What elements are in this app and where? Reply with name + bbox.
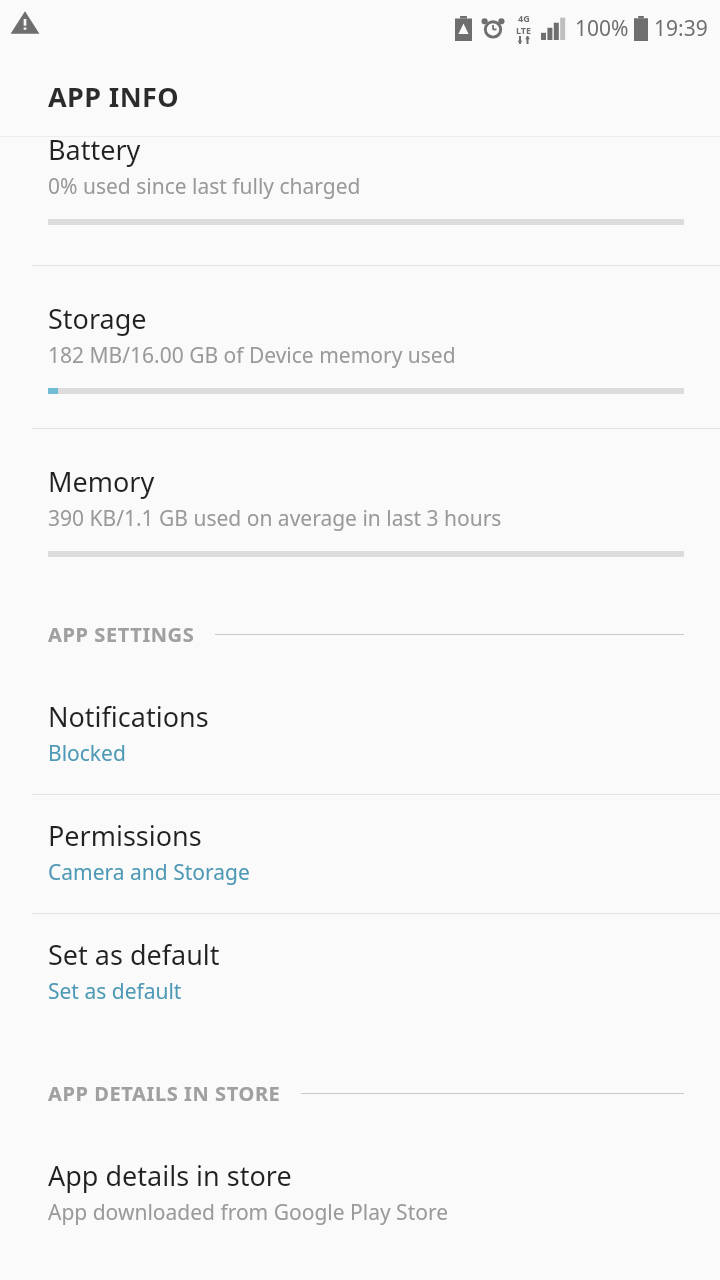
staticText: Permissions	[48, 817, 202, 854]
staticText: App details in store	[48, 1157, 292, 1194]
staticText: 182 MB/16.00 GB of Device memory used	[48, 341, 456, 370]
staticText: Camera and Storage	[48, 858, 250, 887]
staticText: Blocked	[48, 739, 126, 768]
staticText: 4G	[518, 12, 530, 24]
staticText: APP SETTINGS	[48, 621, 195, 648]
button[interactable]: Memory	[0, 429, 720, 557]
staticText: Battery	[48, 131, 141, 168]
button[interactable]: App details in store	[0, 1135, 720, 1253]
staticText: Notifications	[48, 698, 209, 735]
button[interactable]: Notifications	[0, 676, 720, 794]
button[interactable]: Storage	[0, 266, 720, 428]
button[interactable]: Set as default	[0, 914, 720, 1032]
staticText: 19:39	[654, 14, 708, 43]
staticText: 390 KB/1.1 GB used on average in last 3 …	[48, 504, 502, 533]
button[interactable]: Permissions	[0, 795, 720, 913]
staticText: 0% used since last fully charged	[48, 172, 361, 201]
staticText: 100%	[575, 14, 629, 43]
staticText: Memory	[48, 463, 155, 500]
staticText: APP INFO	[48, 78, 180, 115]
staticText: Set as default	[48, 977, 182, 1006]
staticText: Set as default	[48, 936, 220, 973]
staticText: APP DETAILS IN STORE	[48, 1080, 281, 1107]
staticText: App downloaded from Google Play Store	[48, 1198, 449, 1227]
staticText: Storage	[48, 300, 147, 337]
button[interactable]: Battery	[0, 137, 720, 265]
staticText: LTE	[516, 24, 532, 36]
